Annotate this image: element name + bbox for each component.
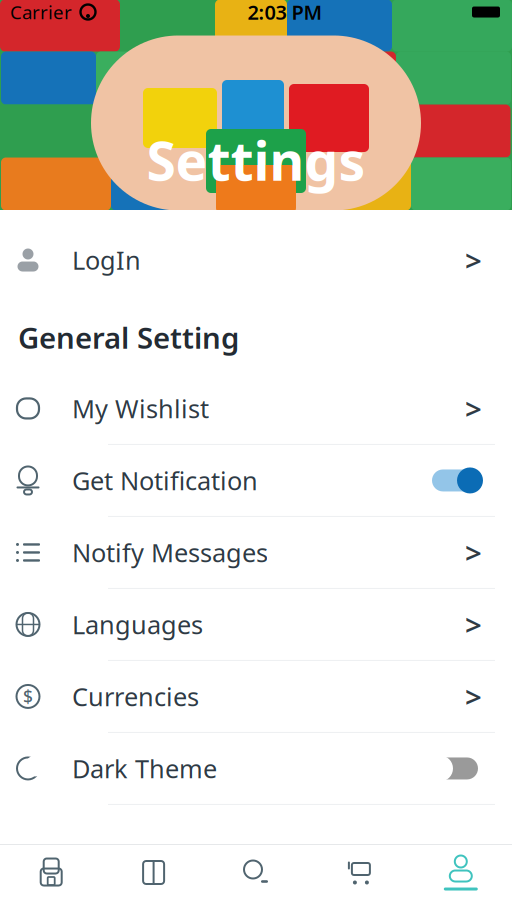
staticText: General Setting xyxy=(18,318,239,357)
staticText: $ xyxy=(23,685,33,708)
button[interactable]: Account xyxy=(410,845,512,900)
staticText: > xyxy=(465,389,482,428)
button[interactable]: Get Notification xyxy=(0,445,512,517)
staticText: > xyxy=(465,605,482,644)
staticText: Settings xyxy=(146,125,365,195)
staticText: > xyxy=(465,533,482,572)
staticText: My Wishlist xyxy=(72,392,209,425)
staticText: > xyxy=(465,240,482,279)
button[interactable]: Home xyxy=(0,845,102,900)
staticText: Get Notification xyxy=(72,464,258,497)
button[interactable]: Search xyxy=(205,845,307,900)
staticText: Dark Theme xyxy=(72,752,217,785)
button[interactable]: LogIn xyxy=(0,228,512,292)
staticText: Languages xyxy=(72,608,203,641)
button[interactable]: Catalog xyxy=(102,845,205,900)
button[interactable]: $ xyxy=(0,661,512,733)
button[interactable]: Cart xyxy=(307,845,410,900)
staticText: Carrier xyxy=(10,0,72,24)
button[interactable]: Dark Theme xyxy=(0,733,512,805)
button[interactable]: Languages xyxy=(0,589,512,661)
staticText: LogIn xyxy=(72,243,141,277)
button[interactable]: Notify Messages xyxy=(0,517,512,589)
staticText: Currencies xyxy=(72,680,199,713)
staticText: 2:03 PM xyxy=(247,0,322,25)
staticText: > xyxy=(465,677,482,716)
staticText: Notify Messages xyxy=(72,536,268,569)
button[interactable]: My Wishlist xyxy=(0,373,512,445)
